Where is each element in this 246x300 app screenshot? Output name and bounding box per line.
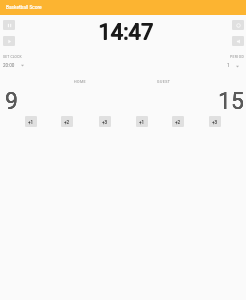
staticText: 20:00 xyxy=(3,63,15,68)
staticText: +3 xyxy=(102,120,108,125)
staticText: Basketball Score xyxy=(6,5,42,11)
staticText: +3 xyxy=(212,120,218,125)
staticText: 1 xyxy=(227,63,230,68)
button[interactable]: Reset clock xyxy=(232,20,244,30)
button[interactable]: Pause xyxy=(3,20,15,30)
staticText: 15 xyxy=(218,88,244,115)
staticText: PERIOD xyxy=(230,55,245,59)
staticText: +1 xyxy=(139,120,145,125)
staticText: 9 xyxy=(5,88,18,115)
staticText: 15 xyxy=(218,88,244,115)
button[interactable]: +3 xyxy=(209,116,221,127)
button[interactable]: +2 xyxy=(61,116,73,127)
button[interactable]: Play xyxy=(3,36,15,46)
staticText: +2 xyxy=(64,120,70,125)
staticText: 14:47 xyxy=(98,19,153,45)
staticText: 14:47 xyxy=(98,20,153,46)
staticText: SET CLOCK xyxy=(3,55,22,59)
staticText: +2 xyxy=(175,120,181,125)
staticText: 15 xyxy=(218,88,244,115)
button[interactable]: +1 xyxy=(136,116,148,127)
button[interactable]: +2 xyxy=(172,116,184,127)
staticText: HOME xyxy=(74,80,87,84)
staticText: 14:47 xyxy=(99,20,154,46)
staticText: +1 xyxy=(28,120,34,125)
staticText: +2 xyxy=(175,120,181,125)
staticText: 15 xyxy=(218,88,244,115)
staticText: +2 xyxy=(64,120,70,125)
staticText: 14:47 xyxy=(99,19,154,45)
button[interactable]: Horn xyxy=(232,36,244,46)
button[interactable]: +1 xyxy=(25,116,37,127)
staticText: +1 xyxy=(28,120,34,125)
staticText: 9 xyxy=(5,88,18,115)
button[interactable]: +3 xyxy=(99,116,111,127)
staticText: GUEST xyxy=(157,80,171,84)
staticText: +3 xyxy=(102,120,108,125)
staticText: 9 xyxy=(5,88,18,115)
staticText: +1 xyxy=(139,120,145,125)
staticText: 9 xyxy=(5,88,18,115)
staticText: +3 xyxy=(212,120,218,125)
